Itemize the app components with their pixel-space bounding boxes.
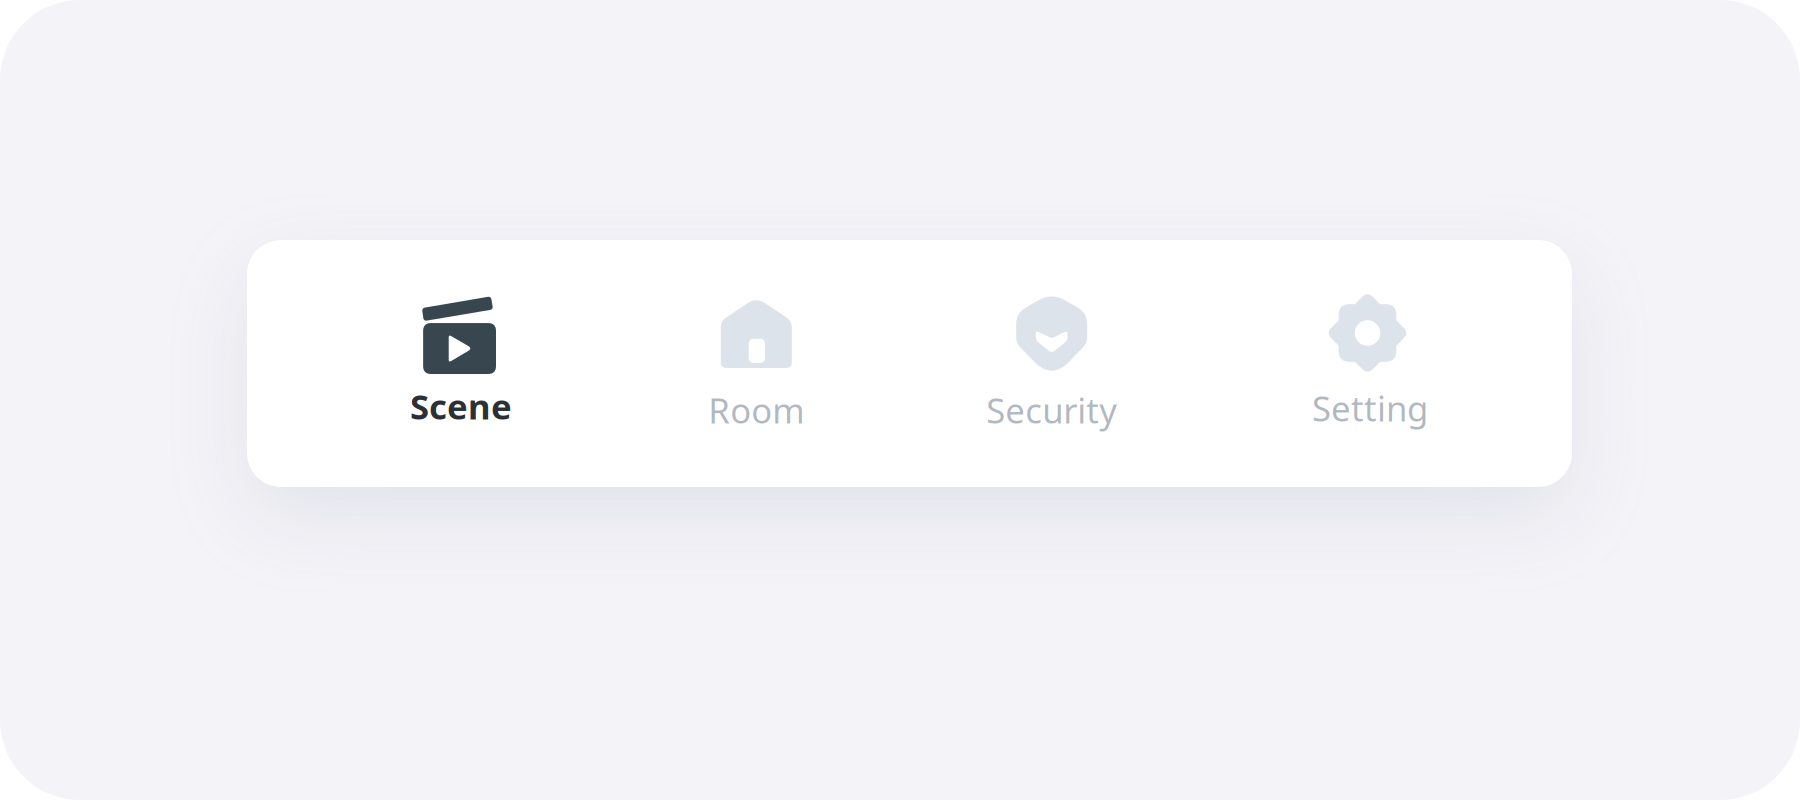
staticText: Setting: [1312, 385, 1428, 431]
staticText: Scene: [410, 383, 512, 429]
button[interactable]: Room: [666, 240, 846, 487]
staticText: Security: [986, 387, 1117, 433]
button[interactable]: Security: [962, 240, 1142, 487]
button[interactable]: Scene: [371, 240, 551, 487]
staticText: Room: [708, 387, 804, 433]
button[interactable]: Setting: [1280, 240, 1460, 487]
